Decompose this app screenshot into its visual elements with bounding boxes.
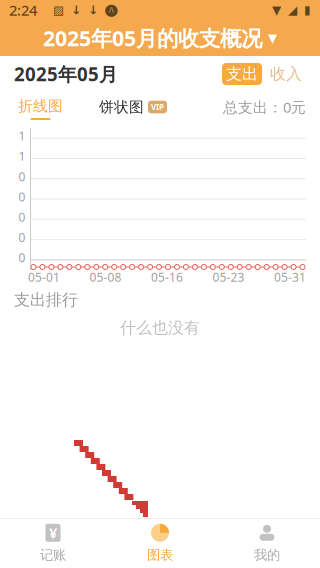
staticText: 饼状图	[99, 98, 144, 116]
button[interactable]: ¥	[0, 519, 106, 568]
button[interactable]: 折线图	[14, 94, 67, 120]
staticText: 1	[18, 148, 25, 164]
staticText: 什么也没有	[120, 318, 200, 338]
staticText: 0	[18, 229, 25, 245]
staticText: ↓	[88, 3, 98, 17]
button[interactable]: 我的	[214, 519, 320, 568]
staticText: 记账	[40, 547, 66, 563]
staticText: 2025年05月	[14, 62, 118, 86]
staticText: ▨	[53, 3, 64, 17]
staticText: 总支出：0元	[223, 97, 306, 117]
button[interactable]: 饼状图	[95, 95, 171, 119]
staticText: 1	[18, 128, 25, 144]
staticText: 支出排行	[14, 290, 78, 310]
staticText: 05-01	[28, 269, 60, 285]
staticText: 05-31	[274, 269, 306, 285]
staticText: 0	[18, 209, 25, 225]
button[interactable]: 图表	[106, 519, 214, 568]
staticText: 0	[18, 169, 25, 184]
staticText: VIP	[151, 102, 164, 112]
staticText: 2:24	[9, 0, 37, 20]
button[interactable]: 收入	[266, 63, 306, 85]
staticText: 折线图	[18, 97, 63, 115]
staticText: ▼	[268, 31, 277, 45]
staticText: 0	[18, 189, 25, 205]
staticText: 收入	[270, 64, 302, 84]
staticText: 05-08	[89, 269, 121, 285]
staticText: ▮	[304, 3, 311, 17]
staticText: 支出	[226, 64, 258, 84]
staticText: 图表	[147, 547, 173, 563]
staticText: 🅐	[105, 4, 117, 16]
staticText: 05-23	[212, 269, 244, 285]
staticText: 05-16	[151, 269, 183, 285]
staticText: 我的	[254, 547, 280, 563]
staticText: ▼	[272, 3, 281, 17]
staticText: 0	[18, 250, 25, 266]
staticText: ↓	[71, 3, 81, 17]
staticText: 2025年05月的收支概况	[43, 24, 262, 52]
staticText: ¥	[49, 523, 57, 543]
button[interactable]: 2025年05月的收支概况	[35, 20, 285, 56]
button[interactable]: 支出	[222, 63, 262, 85]
staticText: ◢	[288, 3, 297, 17]
